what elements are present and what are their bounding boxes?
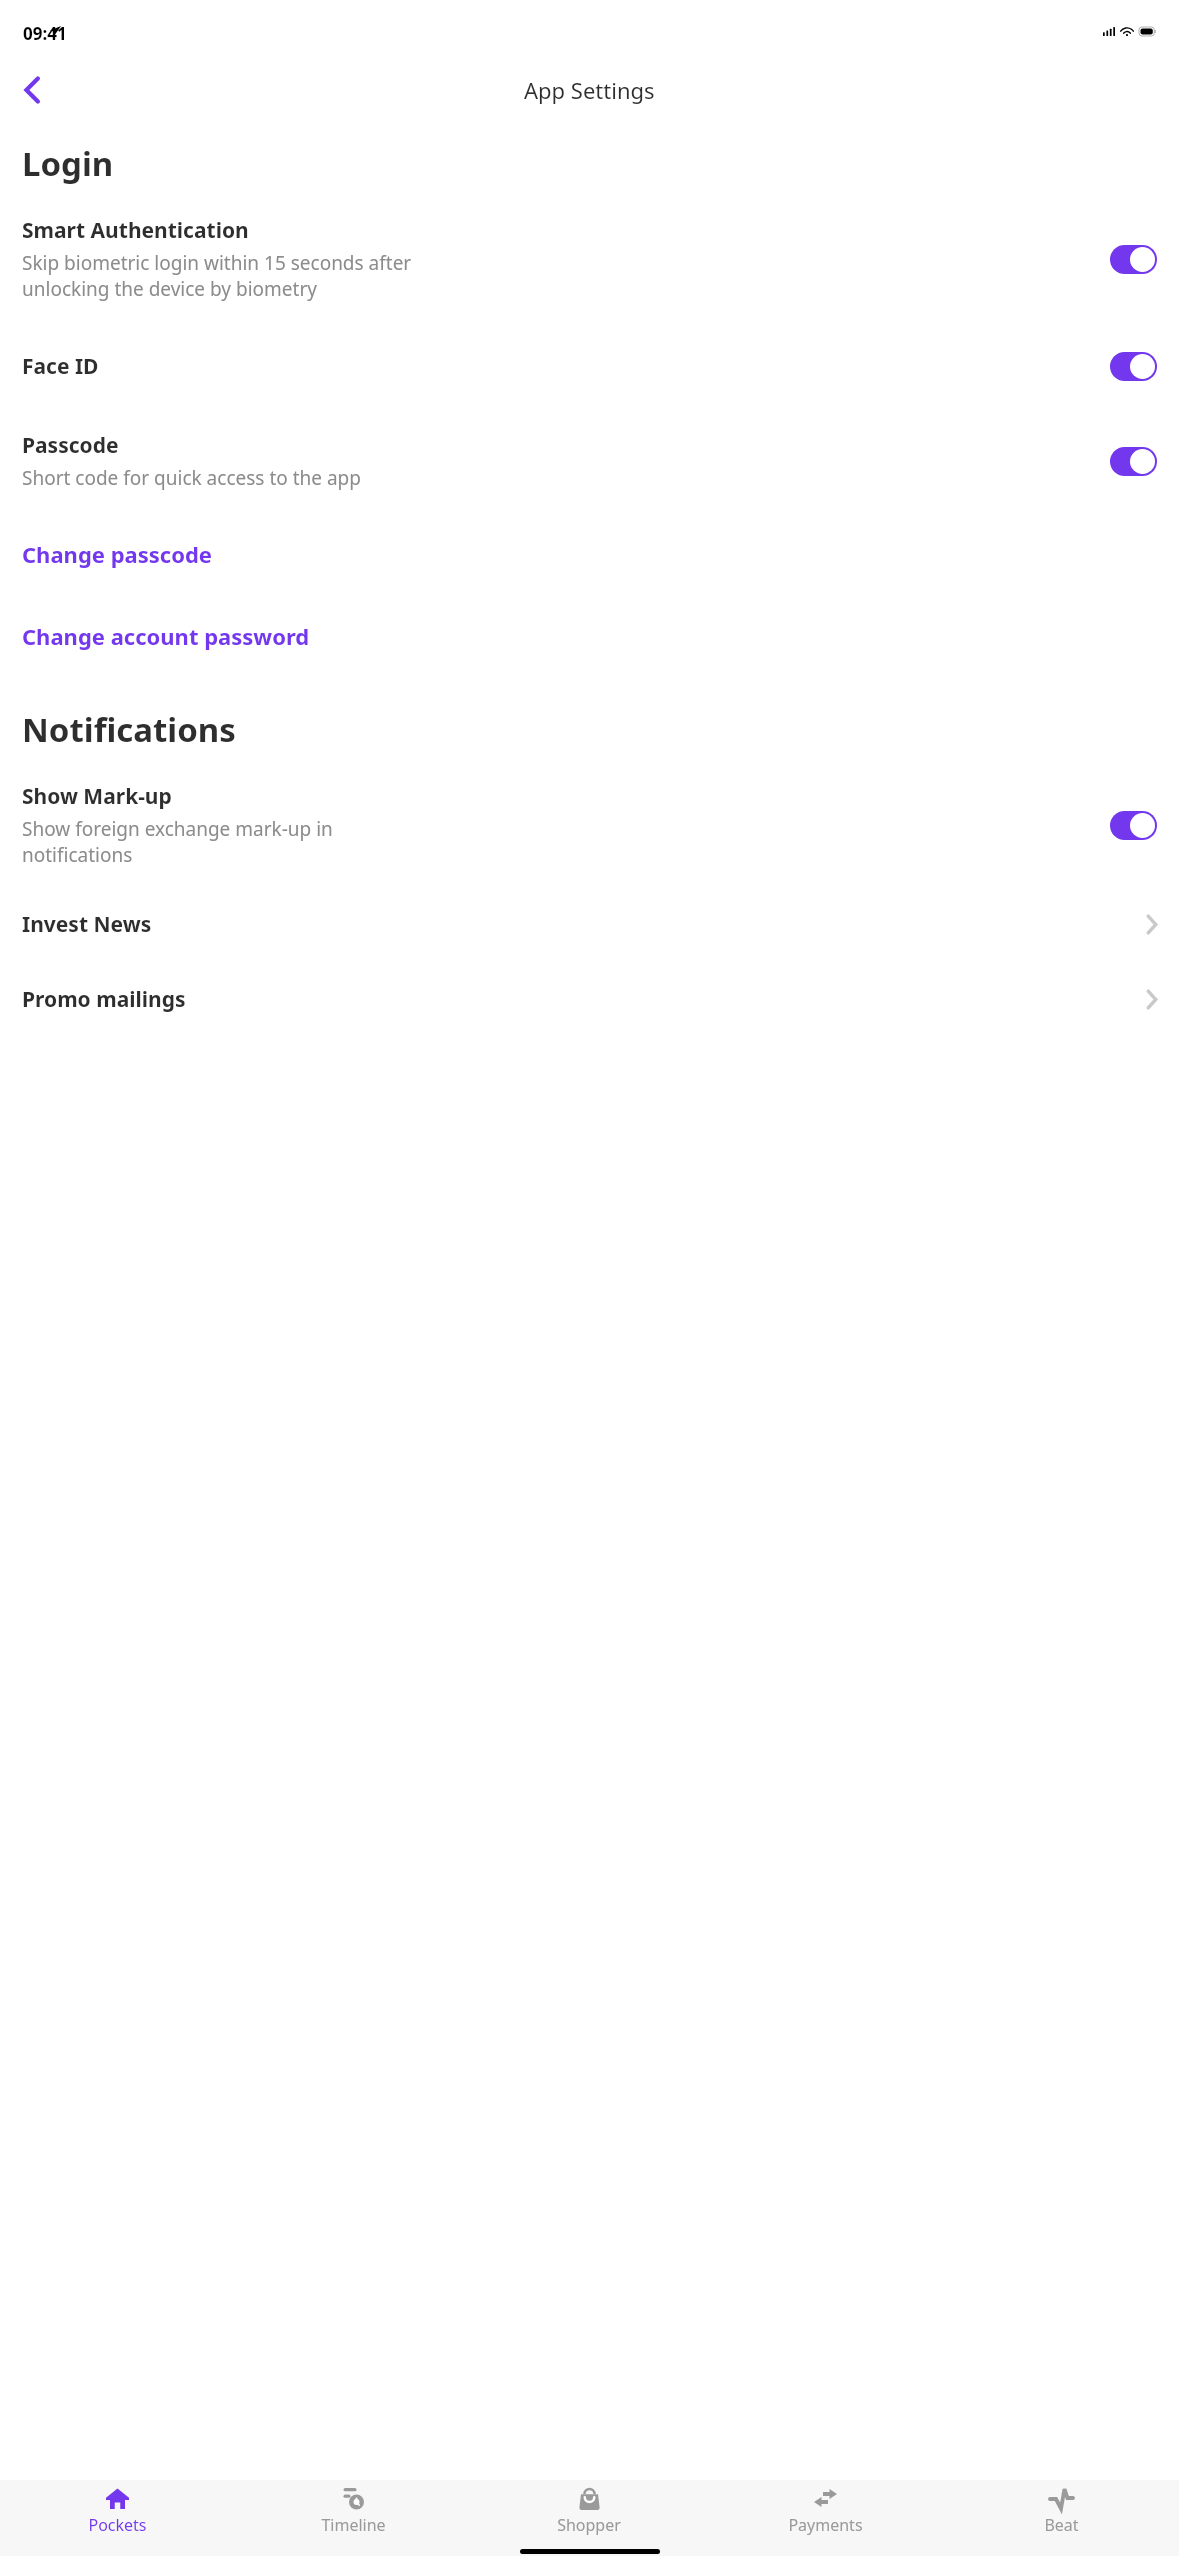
staticText: Timeline	[321, 2514, 386, 2536]
button[interactable]: Shopper	[471, 2480, 707, 2536]
staticText: Login	[22, 141, 1157, 186]
staticText: Invest News	[22, 910, 1147, 939]
button[interactable]: Pockets	[0, 2480, 235, 2536]
button[interactable]: Change passcode	[22, 539, 1157, 569]
staticText: Change passcode	[22, 539, 212, 569]
button[interactable]: Beat	[943, 2480, 1179, 2536]
button[interactable]: Invest News	[22, 910, 1157, 939]
staticText: Beat	[1044, 2514, 1079, 2536]
button[interactable]: Timeline	[235, 2480, 471, 2536]
button[interactable]: Face ID	[22, 352, 1157, 381]
button[interactable]: Back	[6, 64, 58, 116]
staticText: App Settings	[524, 75, 655, 105]
staticText: Payments	[788, 2514, 863, 2536]
staticText: Change account password	[22, 621, 310, 651]
staticText: 09:41	[23, 22, 67, 45]
button[interactable]: Payments	[707, 2480, 943, 2536]
staticText: Short code for quick access to the app	[22, 465, 361, 491]
staticText: Passcode	[22, 431, 119, 460]
button[interactable]: Toggle	[1110, 352, 1157, 381]
button[interactable]: Toggle	[1110, 447, 1157, 476]
staticText: Face ID	[22, 352, 99, 381]
staticText: Smart Authentication	[22, 216, 249, 245]
button[interactable]: Smart Authentication	[22, 216, 1157, 302]
staticText: Pockets	[88, 2514, 147, 2536]
button[interactable]: Change account password	[22, 621, 1157, 651]
button[interactable]: Toggle	[1110, 811, 1157, 840]
staticText: Shopper	[557, 2514, 621, 2536]
staticText: Promo mailings	[22, 985, 1147, 1014]
staticText: Skip biometric login within 15 seconds a…	[22, 250, 412, 302]
button[interactable]: Promo mailings	[22, 985, 1157, 1014]
staticText: Notifications	[22, 707, 1157, 752]
button[interactable]: Toggle	[1110, 245, 1157, 274]
button[interactable]: Show Mark-up	[22, 782, 1157, 868]
staticText: Show Mark-up	[22, 782, 172, 811]
staticText: Show foreign exchange mark-up in notific…	[22, 816, 333, 868]
button[interactable]: Passcode	[22, 431, 1157, 491]
